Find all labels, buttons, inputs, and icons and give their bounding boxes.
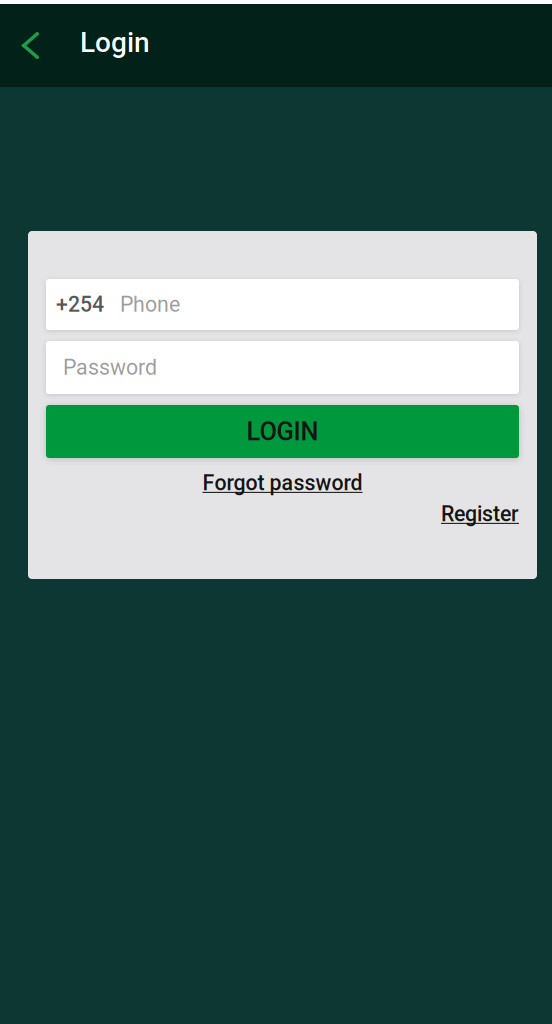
button[interactable]: Forgot password: [46, 470, 519, 496]
staticText: Login: [80, 26, 150, 59]
staticText: Register: [441, 501, 519, 526]
staticText: +254: [56, 292, 104, 317]
button[interactable]: LOGIN: [46, 405, 519, 458]
staticText: LOGIN: [246, 417, 318, 446]
staticText: Password: [63, 355, 157, 380]
staticText: Phone: [120, 292, 180, 317]
staticText: Forgot password: [202, 470, 362, 495]
button[interactable]: Register: [46, 501, 519, 527]
button[interactable]: Password: [46, 341, 519, 394]
button[interactable]: +254: [46, 279, 519, 330]
button[interactable]: Back: [0, 4, 80, 87]
